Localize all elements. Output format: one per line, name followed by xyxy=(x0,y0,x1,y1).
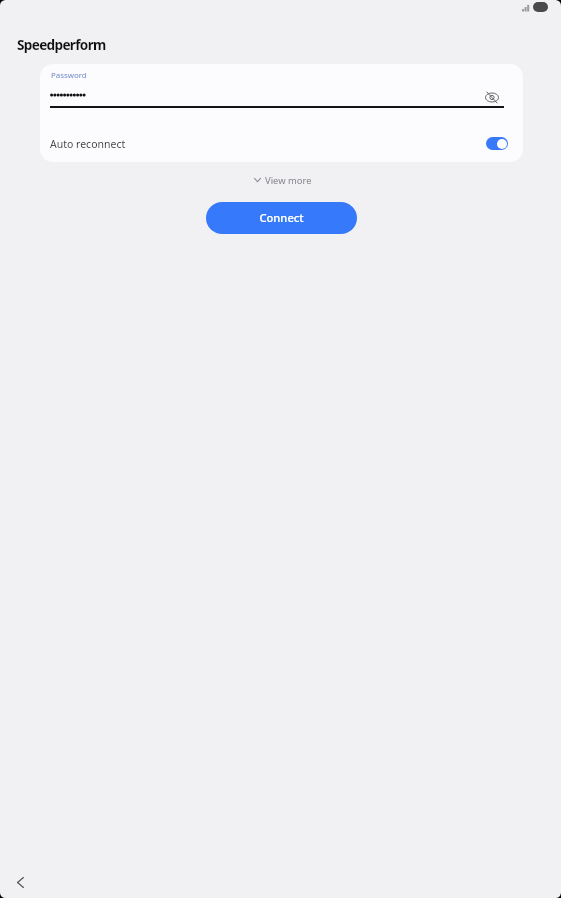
button[interactable] xyxy=(48,68,516,108)
button[interactable]: Connect xyxy=(206,202,357,234)
staticText: Speedperform xyxy=(17,35,106,54)
staticText: Connect xyxy=(259,210,304,225)
button[interactable]: Show password xyxy=(480,85,504,109)
button[interactable]: View more xyxy=(249,171,313,189)
button[interactable]: Auto reconnect xyxy=(40,126,523,162)
staticText: View more xyxy=(265,174,312,187)
button[interactable]: Back xyxy=(9,871,31,893)
staticText: Password xyxy=(51,70,87,81)
staticText: Auto reconnect xyxy=(50,137,126,151)
